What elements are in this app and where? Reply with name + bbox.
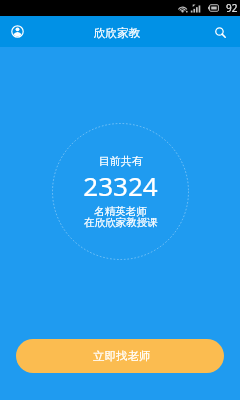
- staticText: 欣欣家教: [94, 26, 140, 40]
- button[interactable]: 立即找老师: [16, 339, 224, 373]
- staticText: 在欣欣家教授课: [84, 216, 158, 229]
- staticText: 立即找老师: [93, 349, 151, 363]
- button[interactable]: Search: [208, 20, 232, 44]
- button[interactable]: Account: [6, 20, 29, 43]
- staticText: 名精英老师: [94, 205, 147, 218]
- staticText: 92: [226, 1, 238, 15]
- staticText: 23324: [83, 168, 158, 203]
- staticText: 目前共有: [99, 154, 143, 168]
